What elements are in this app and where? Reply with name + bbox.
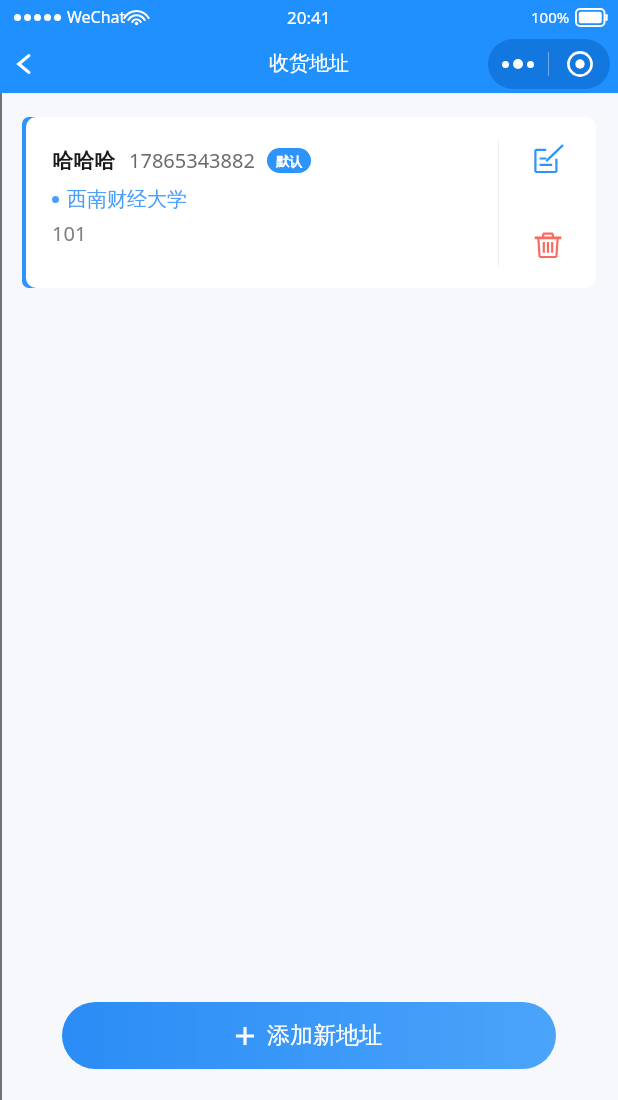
staticText: 西南财经大学 xyxy=(67,187,187,212)
staticText: 收货地址 xyxy=(269,51,349,76)
staticText: 17865343882 xyxy=(129,147,255,174)
staticText: 默认 xyxy=(276,153,302,169)
staticText: 哈哈哈 xyxy=(52,148,115,174)
staticText: 添加新地址 xyxy=(267,1021,382,1050)
staticText: 101 xyxy=(52,220,87,247)
button[interactable]: More xyxy=(488,39,548,89)
staticText: WeChat xyxy=(67,6,126,28)
button[interactable]: Edit address xyxy=(499,117,596,202)
button[interactable]: Back xyxy=(0,40,48,88)
button[interactable]: 哈哈哈 xyxy=(26,117,596,288)
button[interactable]: Close xyxy=(549,39,610,89)
button[interactable]: Delete address xyxy=(499,202,596,288)
button[interactable]: 添加新地址 xyxy=(62,1002,556,1069)
staticText: 100% xyxy=(531,7,570,27)
staticText: 20:41 xyxy=(287,6,331,29)
